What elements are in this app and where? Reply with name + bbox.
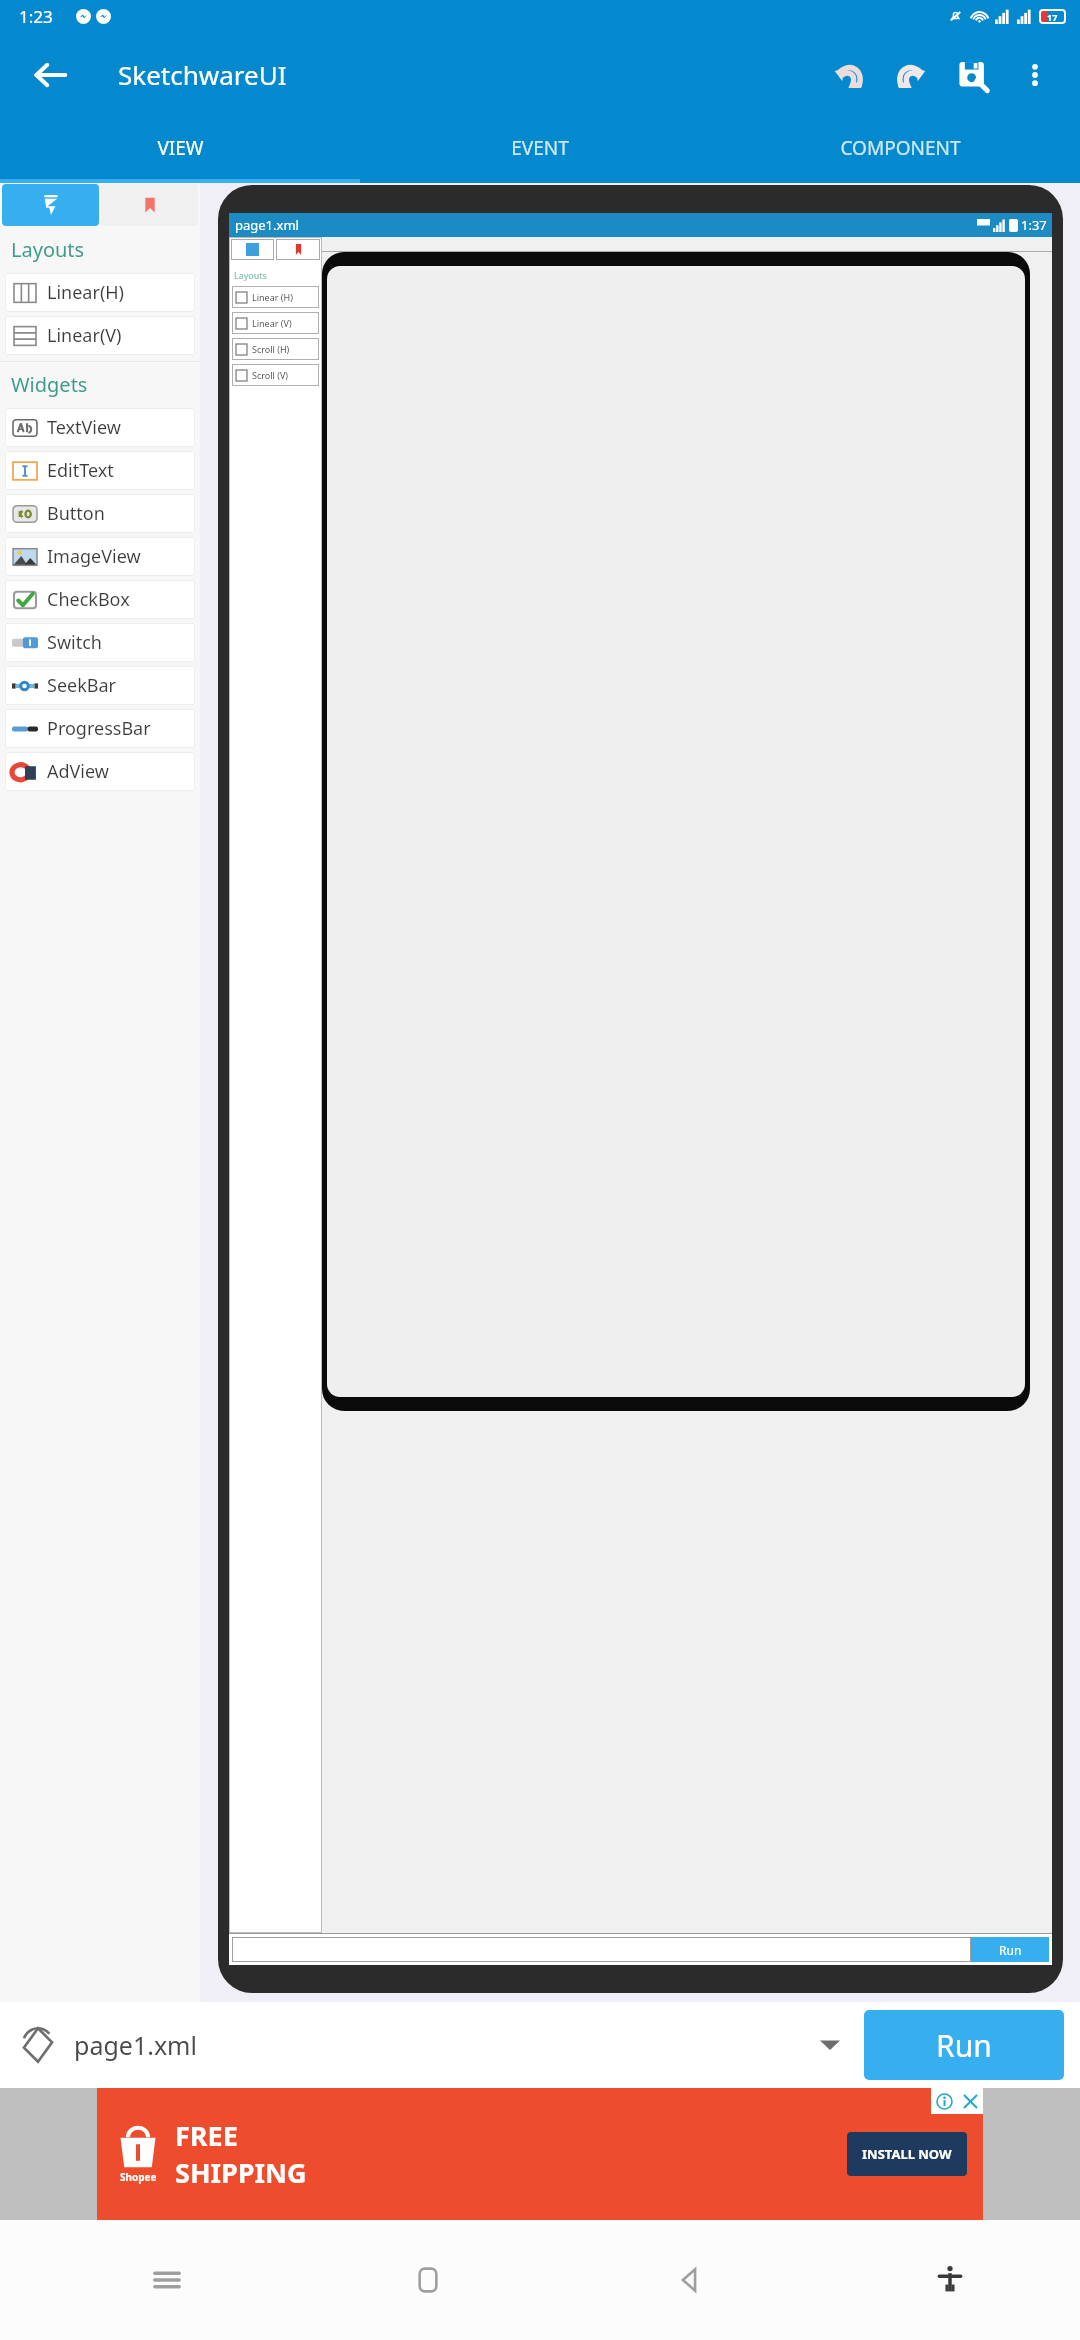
staticText: CheckBox [47, 587, 130, 612]
button[interactable]: Save [942, 44, 1004, 106]
staticText: Switch [47, 630, 102, 655]
button[interactable]: Scroll (H) [232, 338, 319, 360]
button[interactable]: Recents [127, 2240, 207, 2320]
staticText: AdView [47, 759, 109, 784]
staticText: page1.xml [74, 2028, 197, 2062]
button[interactable]: Redo [880, 44, 942, 106]
button[interactable]: EVENT [360, 116, 720, 179]
staticText: Shopee [120, 2170, 157, 2184]
button[interactable]: ImageView [5, 537, 195, 576]
staticText: 1:23 [19, 5, 53, 28]
button[interactable]: Linear (V) [232, 312, 319, 334]
button[interactable]: Linear(V) [5, 316, 195, 355]
button[interactable]: Linear(H) [5, 273, 195, 312]
button[interactable]: Switch [5, 623, 195, 662]
button[interactable]: Run [971, 1937, 1049, 1962]
staticText: 17 [1047, 11, 1058, 23]
staticText: SketchwareUI [118, 57, 287, 92]
button[interactable]: Close ad [957, 2088, 983, 2114]
button[interactable]: Home [388, 2240, 468, 2320]
staticText: Run [999, 1942, 1022, 1958]
staticText: SHIPPING [175, 2154, 307, 2191]
button[interactable]: Scroll (V) [232, 364, 319, 386]
button[interactable]: More options [1004, 44, 1066, 106]
button[interactable]: Back [24, 49, 76, 101]
button[interactable]: Button [5, 494, 195, 533]
staticText: INSTALL NOW [862, 2145, 952, 2163]
staticText: FREE [175, 2117, 238, 2154]
button[interactable]: Accessibility [910, 2240, 990, 2320]
button[interactable]: ProgressBar [5, 709, 195, 748]
staticText: Run [936, 2025, 992, 2066]
staticText: VIEW [157, 135, 204, 161]
button[interactable]: CheckBox [5, 580, 195, 619]
staticText: page1.xml [235, 216, 299, 234]
staticText: Widgets [11, 371, 88, 398]
button[interactable]: Back [649, 2240, 729, 2320]
button[interactable]: Undo [818, 44, 880, 106]
staticText: Linear (V) [252, 317, 292, 329]
staticText: TextView [47, 415, 121, 440]
button[interactable]: Linear (H) [232, 286, 319, 308]
button[interactable]: Widgets palette [2, 184, 99, 226]
staticText: Linear (H) [252, 291, 293, 303]
staticText: SeekBar [47, 673, 117, 698]
button[interactable]: Ad info [931, 2088, 957, 2114]
button[interactable]: VIEW [0, 116, 360, 179]
staticText: Scroll (V) [252, 369, 289, 381]
button[interactable]: AdView [5, 752, 195, 791]
button[interactable]: Select file [808, 2023, 852, 2067]
button[interactable]: page1.xml [16, 2002, 808, 2088]
staticText: EditText [47, 458, 114, 483]
staticText: Layouts [234, 269, 267, 281]
button[interactable]: TextView [5, 408, 195, 447]
staticText: Button [47, 501, 105, 526]
staticText: Layouts [11, 236, 85, 263]
staticText: Scroll (H) [252, 343, 290, 355]
staticText: COMPONENT [840, 135, 961, 161]
button[interactable]: SeekBar [5, 666, 195, 705]
staticText: ProgressBar [47, 716, 151, 741]
button[interactable]: Favourites [101, 184, 198, 226]
staticText: Linear(H) [47, 280, 125, 305]
button[interactable]: COMPONENT [720, 116, 1080, 179]
staticText: EVENT [511, 135, 569, 161]
staticText: Linear(V) [47, 323, 122, 348]
button[interactable]: Shopee [97, 2088, 983, 2220]
button[interactable]: EditText [5, 451, 195, 490]
staticText: 1:37 [1021, 216, 1047, 234]
button[interactable]: INSTALL NOW [847, 2132, 967, 2176]
button[interactable]: Run [864, 2010, 1064, 2080]
staticText: ImageView [47, 544, 141, 569]
